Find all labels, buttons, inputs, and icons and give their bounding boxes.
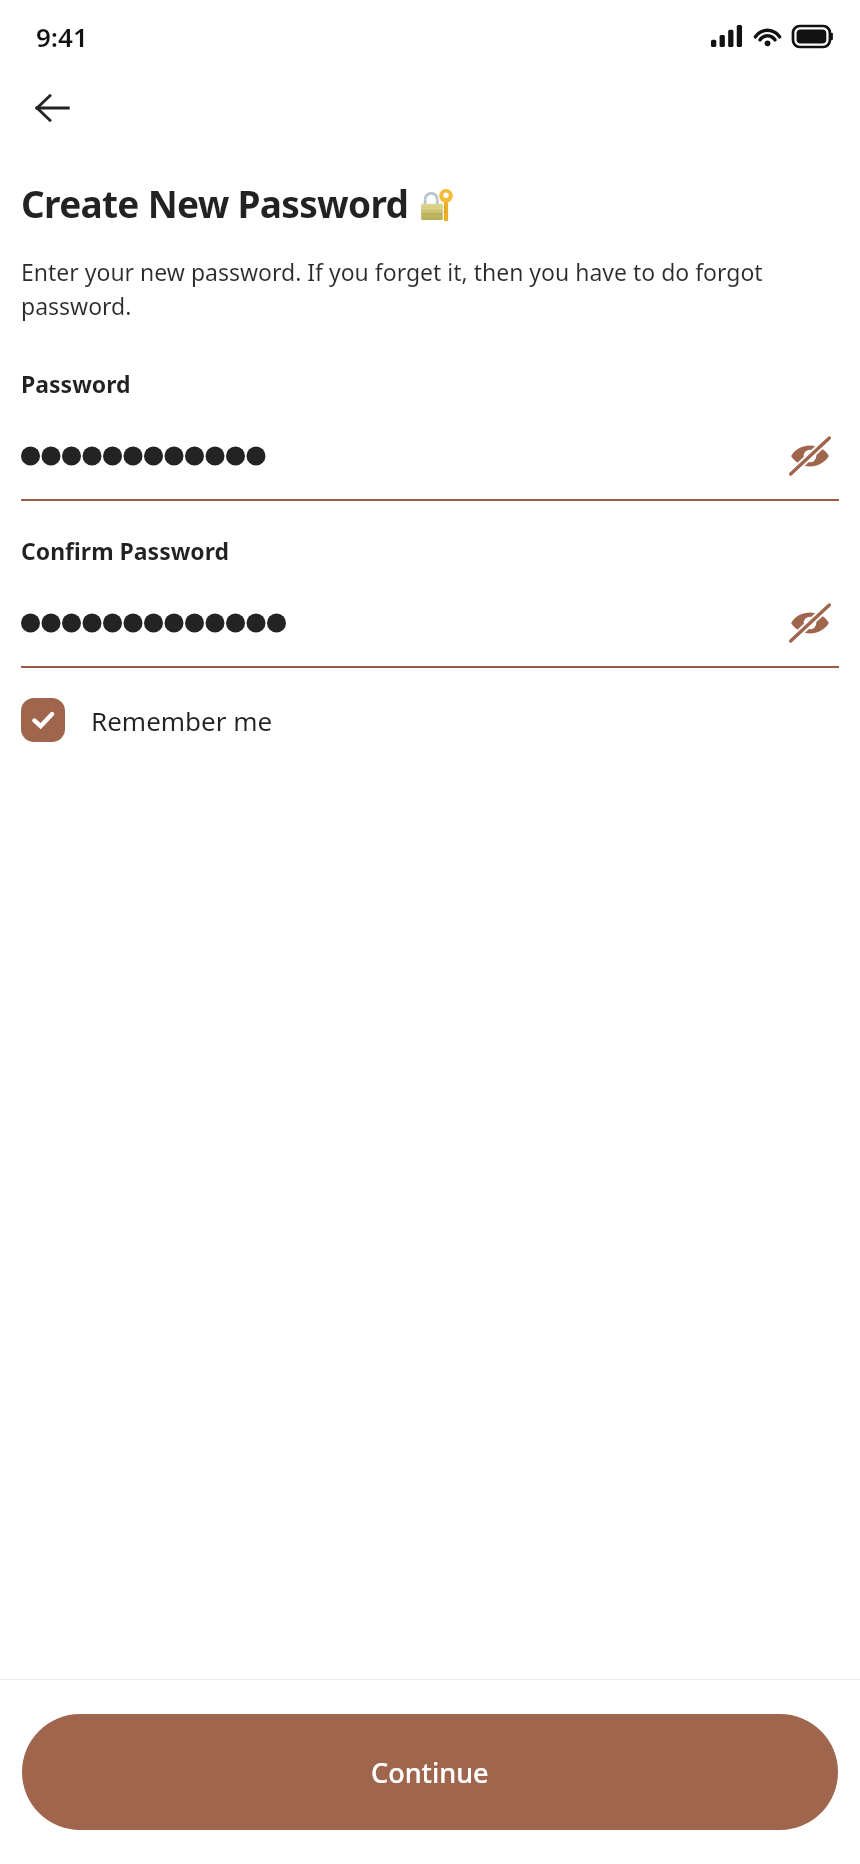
staticText: Continue [371, 1754, 489, 1791]
button[interactable]: Show password [781, 594, 839, 652]
staticText: Password [21, 368, 131, 399]
button[interactable]: Continue [22, 1714, 838, 1830]
staticText: Enter your new password. If you forget i… [21, 256, 768, 322]
staticText: Remember me [91, 703, 273, 738]
button[interactable]: Back [26, 82, 78, 134]
staticText: Create New Password [21, 178, 409, 228]
staticText: Confirm Password [21, 535, 230, 566]
button[interactable]: Show password [781, 427, 839, 485]
button[interactable]: Remember me [21, 694, 289, 746]
staticText: 9:41 [36, 19, 88, 54]
